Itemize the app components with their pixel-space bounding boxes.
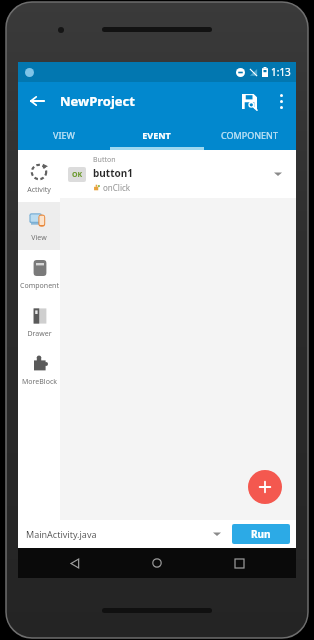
- staticText: View: [31, 233, 47, 243]
- button[interactable]: Select file: [208, 525, 226, 543]
- staticText: Activity: [27, 185, 51, 195]
- button[interactable]: Back: [50, 548, 100, 578]
- staticText: 1:13: [271, 65, 291, 79]
- staticText: Drawer: [27, 329, 52, 339]
- staticText: COMPONENT: [221, 129, 278, 141]
- staticText: MainActivity.java: [26, 528, 97, 540]
- button[interactable]: Save: [230, 82, 268, 120]
- button[interactable]: EVENT: [110, 120, 203, 150]
- button[interactable]: COMPONENT: [203, 120, 296, 150]
- button[interactable]: Expand: [268, 164, 288, 184]
- staticText: EVENT: [142, 129, 171, 141]
- staticText: NewProject: [60, 92, 135, 110]
- button[interactable]: Activity: [18, 154, 60, 202]
- button[interactable]: Drawer: [18, 298, 60, 346]
- button[interactable]: Home: [132, 548, 182, 578]
- staticText: VIEW: [53, 129, 75, 141]
- staticText: MoreBlock: [22, 377, 57, 387]
- staticText: button1: [93, 166, 133, 180]
- button[interactable]: Add event: [248, 470, 282, 504]
- button[interactable]: More options: [268, 82, 294, 120]
- button[interactable]: VIEW: [18, 120, 110, 150]
- button[interactable]: Run: [232, 524, 290, 544]
- staticText: OK: [72, 170, 83, 180]
- button[interactable]: Back: [18, 82, 56, 120]
- staticText: Run: [251, 527, 271, 541]
- button[interactable]: OK: [60, 150, 296, 198]
- button[interactable]: Component: [18, 250, 60, 298]
- button[interactable]: MoreBlock: [18, 346, 60, 394]
- button[interactable]: View: [18, 202, 60, 250]
- staticText: Component: [20, 281, 59, 291]
- staticText: Button: [93, 155, 116, 165]
- button[interactable]: Recent apps: [214, 548, 264, 578]
- staticText: onClick: [103, 182, 131, 193]
